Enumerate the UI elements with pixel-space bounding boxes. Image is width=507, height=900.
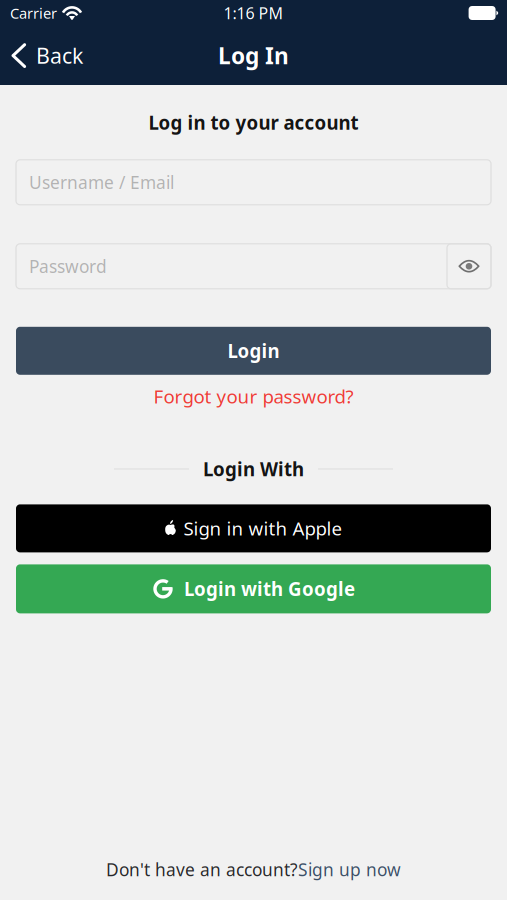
staticText: Sign up now <box>298 858 401 881</box>
staticText: Sign in with Apple <box>183 516 342 541</box>
staticText: Log in to your account <box>148 110 358 135</box>
button[interactable]: Sign in with Apple <box>16 504 491 552</box>
button[interactable]: Back <box>0 31 97 79</box>
button[interactable]: Login with Google <box>16 564 491 613</box>
staticText: Username / Email <box>29 171 174 194</box>
staticText: Back <box>36 41 83 70</box>
button[interactable]: Login <box>16 327 491 375</box>
staticText: Password <box>29 255 107 278</box>
button[interactable]: Show password <box>447 244 491 289</box>
staticText: Log In <box>218 40 289 70</box>
button[interactable]: Sign up now <box>298 858 401 881</box>
button[interactable]: Forgot your password? <box>153 379 353 414</box>
staticText: 1:16 PM <box>223 2 283 24</box>
staticText: Login <box>227 338 279 363</box>
staticText: Don't have an account? <box>106 858 298 881</box>
staticText: Login with Google <box>184 576 355 601</box>
staticText: Login With <box>203 457 304 481</box>
staticText: Carrier <box>10 3 57 23</box>
staticText: Forgot your password? <box>153 384 353 409</box>
